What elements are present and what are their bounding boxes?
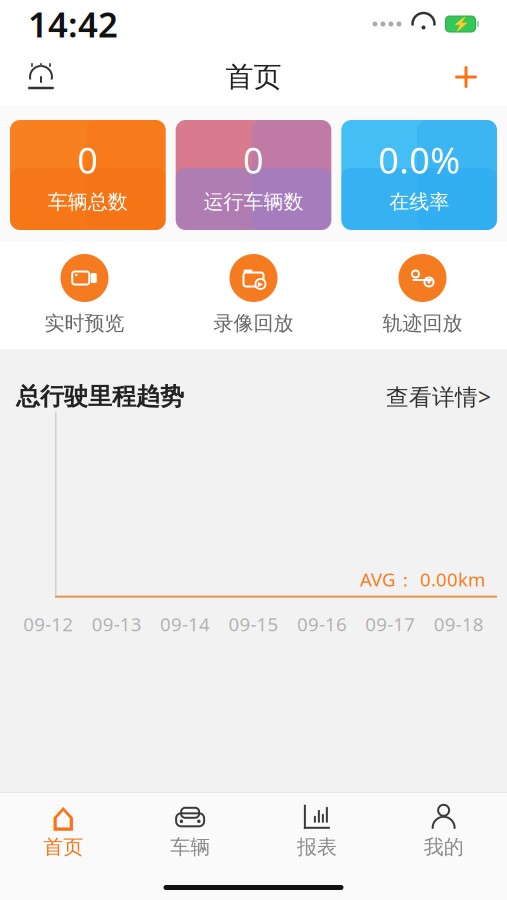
button[interactable]: 报警 [18,54,64,100]
staticText: ⚡ [451,16,469,32]
staticText: ▶ [258,280,263,288]
staticText: 0.0% [378,136,460,184]
staticText: 📈 [305,806,328,827]
staticText: 14:42 [28,1,118,47]
staticText: 0 [243,136,264,184]
staticText: 首页 [225,60,281,94]
staticText: 09-14 [160,612,210,636]
button[interactable]: 实时预览 [0,254,169,336]
staticText: 在线率 [389,190,449,214]
staticText: 查看详情> [386,382,491,412]
staticText: 总行驶里程趋势 [16,382,184,411]
button[interactable]: ⌂ [0,803,127,859]
staticText: 09-16 [297,612,347,636]
button[interactable]: 车辆 [127,803,254,859]
staticText: 我的 [424,835,464,859]
button[interactable]: 添加 [443,54,489,100]
staticText: 实时预览 [44,311,124,336]
staticText: 运行车辆数 [203,190,303,214]
staticText: 09-13 [92,612,142,636]
staticText: 首页 [43,835,83,859]
button[interactable]: 📈 [253,803,380,859]
staticText: 0 [77,136,98,184]
staticText: 车辆 [170,835,210,859]
staticText: 09-12 [23,612,73,636]
staticText: 09-18 [434,612,484,636]
staticText: 09-15 [228,612,278,636]
button[interactable]: 查看详情> [386,382,491,412]
button[interactable]: 我的 [380,803,507,859]
staticText: 录像回放 [213,311,293,336]
staticText: 报表 [297,835,337,859]
staticText: 车辆总数 [48,190,128,214]
staticText: ⌂ [51,794,76,839]
staticText: 轨迹回放 [382,311,462,336]
button[interactable]: 轨迹回放 [338,254,507,336]
button[interactable]: ▶ [169,254,338,336]
staticText: 09-17 [365,612,415,636]
staticText: AVG： 0.00km [360,567,485,592]
